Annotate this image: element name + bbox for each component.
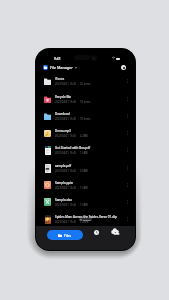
staticText: Search <box>83 218 91 221</box>
button[interactable]: More options <box>123 144 131 156</box>
button[interactable]: Account <box>121 65 126 70</box>
button[interactable]: Cloud <box>111 227 122 238</box>
staticText: Recycle Bin <box>55 95 72 99</box>
staticText: 2023/04/21 16:45 <box>55 220 77 224</box>
staticText: 4.2MB <box>80 134 88 138</box>
staticText: Download <box>55 112 70 116</box>
staticText: Sample.pptx <box>55 181 73 185</box>
staticText: 2023/04/21 16:45 <box>55 117 77 121</box>
button[interactable]: More options <box>123 213 131 225</box>
staticText: 9:41 <box>54 56 61 60</box>
staticText: 20 items <box>80 82 91 86</box>
staticText: File Manager <box>50 65 73 70</box>
staticText: 1.6MB <box>80 151 88 155</box>
button[interactable]: More options <box>123 196 131 208</box>
button[interactable]: Sample.xlsx <box>36 193 135 210</box>
staticText: Files <box>64 233 72 237</box>
button[interactable]: More options <box>123 127 131 139</box>
staticText: 2023/04/21 16:45 <box>55 186 77 190</box>
button[interactable]: File Manager <box>43 65 77 70</box>
button[interactable]: More options <box>123 110 131 122</box>
staticText: 0.6MB <box>80 169 88 173</box>
staticText: 2023/04/21 16:45 <box>55 151 77 155</box>
staticText: 2023/04/21 16:45 <box>55 82 77 86</box>
staticText: 1.6MB <box>80 203 88 207</box>
staticText: 1.6MB <box>80 186 88 190</box>
staticText: 2023/04/21 16:45 <box>55 100 77 104</box>
button[interactable]: Demo.mp3 <box>36 124 135 141</box>
button[interactable]: More options <box>123 93 131 105</box>
staticText: Spider-Man: Across the Spider-Verse 01.c… <box>55 215 117 219</box>
staticText: Get Started with Box.pdf <box>55 146 91 150</box>
staticText: 2023/04/21 16:45 <box>55 134 77 138</box>
button[interactable]: Sample.pptx <box>36 176 135 193</box>
staticText: 18 items <box>80 100 91 104</box>
staticText: 2023/04/21 16:45 <box>55 169 77 173</box>
button[interactable]: Recent <box>91 227 102 238</box>
staticText: 70 items <box>80 117 91 121</box>
button[interactable]: Recycle Bin <box>36 90 135 107</box>
staticText: 720MB <box>80 220 89 224</box>
button[interactable]: sample.pdf <box>36 159 135 176</box>
staticText: Sample.xlsx <box>55 198 72 202</box>
staticText: Demo.mp3 <box>55 129 71 133</box>
staticText: 2023/04/21 16:45 <box>55 203 77 207</box>
staticText: sample.pdf <box>55 164 72 168</box>
staticText: iTunes <box>55 77 65 81</box>
button[interactable]: More options <box>123 179 131 191</box>
button[interactable]: More options <box>123 162 131 174</box>
button[interactable]: More options <box>123 75 131 87</box>
button[interactable]: Download <box>36 107 135 124</box>
button[interactable]: Search <box>79 218 92 221</box>
button[interactable]: Get Started with Box.pdf <box>36 141 135 158</box>
button[interactable]: iTunes <box>36 72 135 89</box>
button[interactable]: Files <box>47 230 83 240</box>
button[interactable]: Spider-Man: Across the Spider-Verse 01.c… <box>36 210 135 227</box>
